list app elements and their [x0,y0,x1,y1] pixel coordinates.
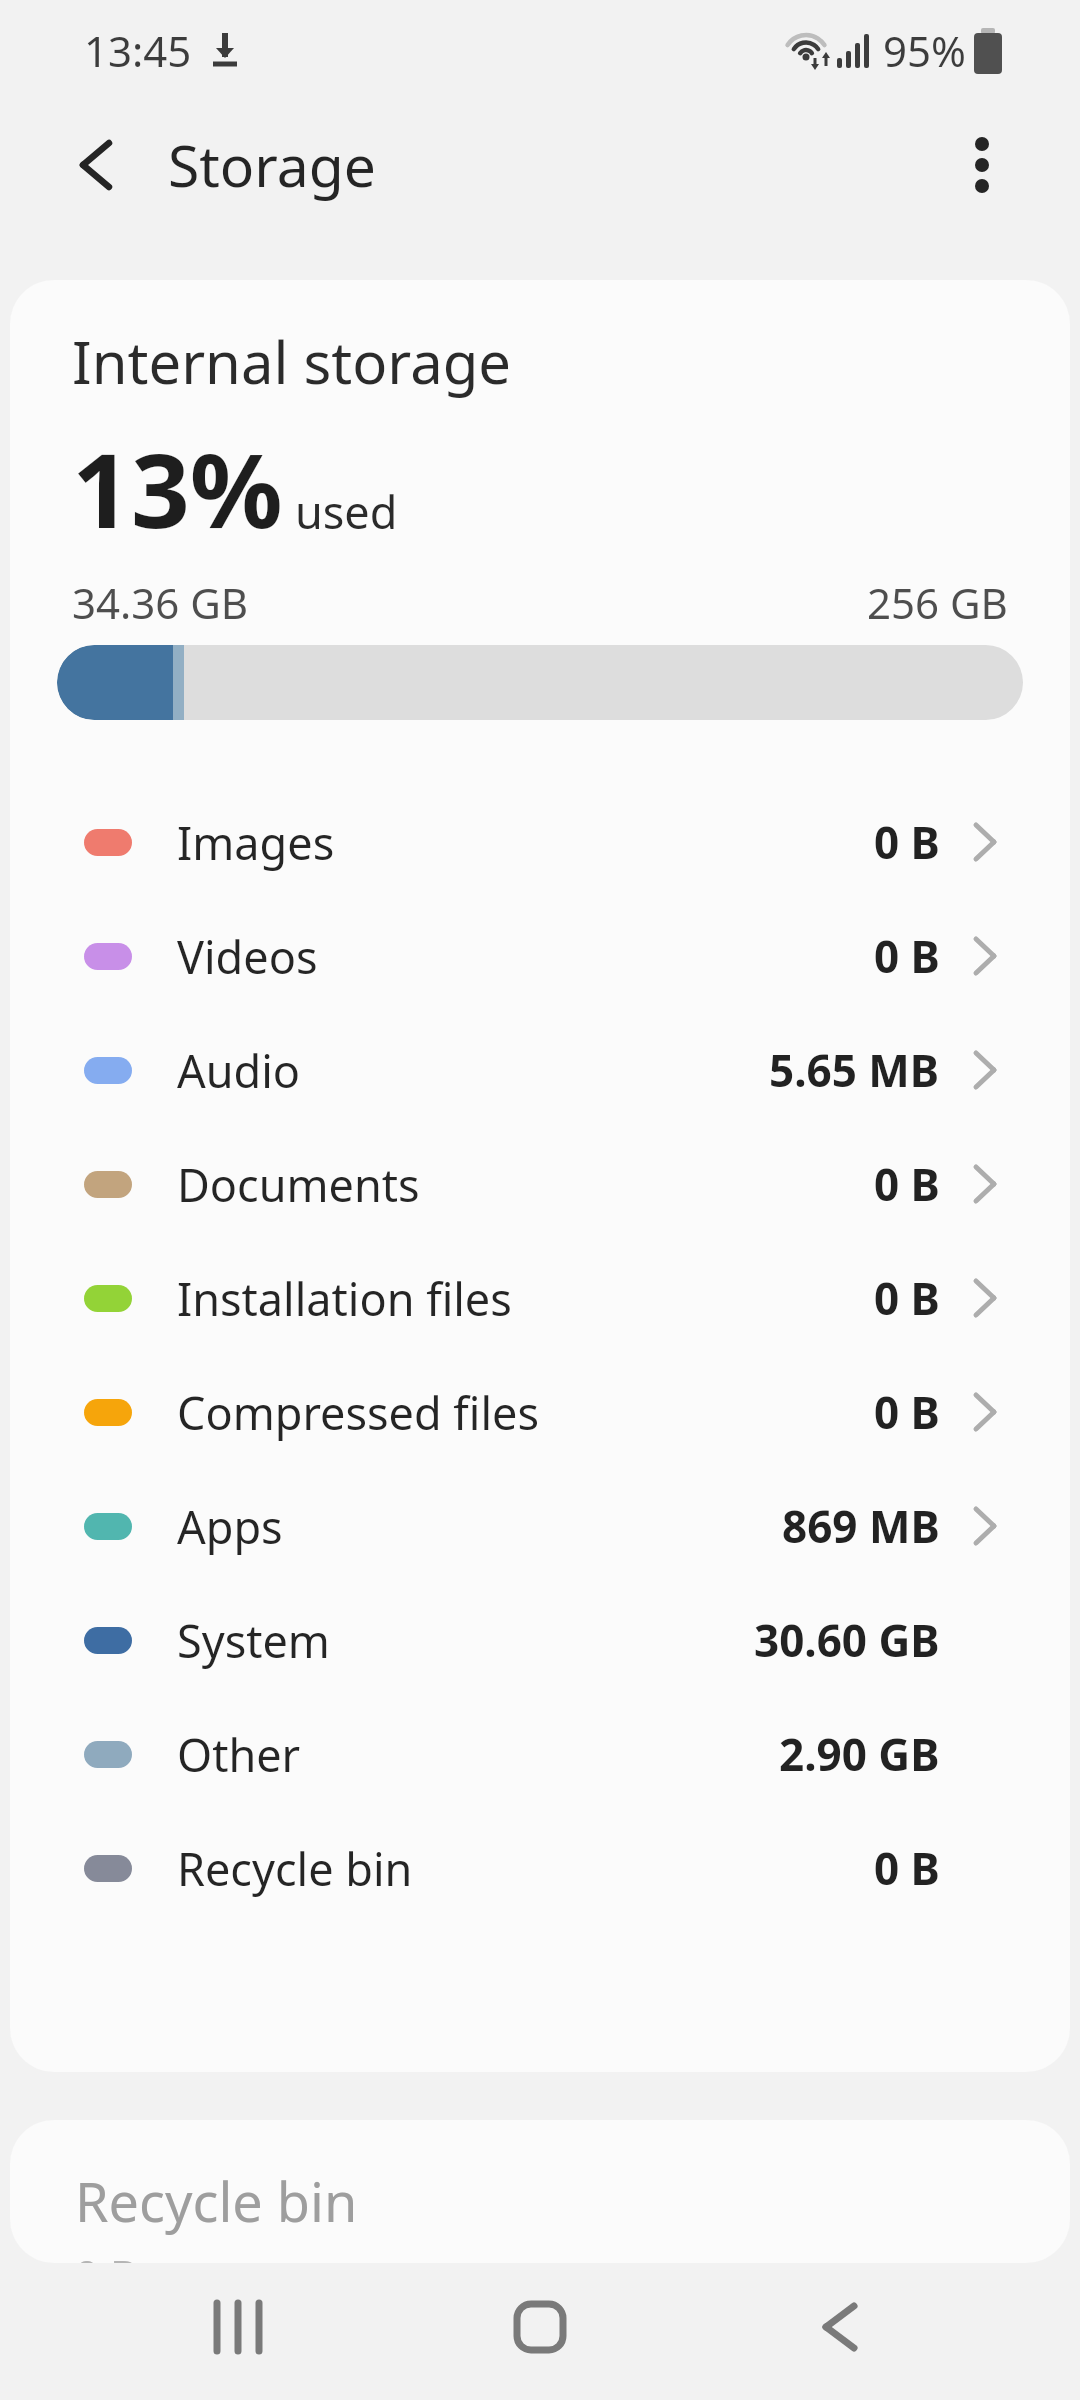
button[interactable] [178,2267,298,2387]
staticText: 2.90 GB [779,1724,940,1784]
staticText: Images [177,812,335,873]
staticText: used [295,481,398,542]
staticText: 13% [72,418,283,558]
button[interactable] [946,129,1018,201]
staticText: 0 B [874,1838,940,1898]
staticText: Audio [177,1040,301,1101]
button[interactable] [780,2267,900,2387]
staticText: Recycle bin [177,1838,413,1899]
staticText: Installation files [177,1268,512,1329]
staticText: 13:45 [84,22,192,79]
staticText: 0 B [75,2246,138,2263]
button[interactable]: Apps [10,1469,1070,1583]
button[interactable]: Videos [10,899,1070,1013]
staticText: 5.65 MB [769,1040,940,1100]
staticText: Videos [177,926,318,987]
button[interactable]: Images [10,785,1070,899]
staticText: Recycle bin [75,2164,358,2238]
staticText: Internal storage [72,322,512,401]
staticText: 869 MB [782,1496,940,1556]
staticText: Compressed files [177,1382,539,1443]
staticText: Apps [177,1496,283,1557]
button[interactable] [480,2267,600,2387]
staticText: 30.60 GB [754,1610,940,1670]
button[interactable]: Documents [10,1127,1070,1241]
button[interactable]: Audio [10,1013,1070,1127]
button[interactable]: Compressed files [10,1355,1070,1469]
button[interactable]: System [10,1583,1070,1697]
staticText: Storage [168,126,376,204]
button[interactable]: Recycle bin [10,2120,1070,2263]
button[interactable]: Recycle bin [10,1811,1070,1925]
staticText: System [177,1610,330,1671]
staticText: Other [177,1724,301,1785]
button[interactable] [56,125,136,205]
staticText: 0 B [874,812,940,872]
staticText: 34.36 GB [72,574,249,631]
button[interactable]: Installation files [10,1241,1070,1355]
staticText: 0 B [874,1382,940,1442]
staticText: 95% [883,22,966,79]
staticText: Documents [177,1154,420,1215]
staticText: 0 B [874,926,940,986]
staticText: 0 B [874,1154,940,1214]
button[interactable]: Other [10,1697,1070,1811]
staticText: 0 B [874,1268,940,1328]
staticText: 256 GB [867,574,1008,631]
